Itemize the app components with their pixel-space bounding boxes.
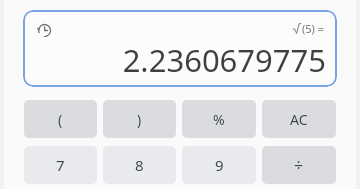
staticText: (5) =: [302, 21, 325, 36]
staticText: %: [213, 110, 225, 129]
staticText: 8: [135, 155, 144, 175]
staticText: 7: [56, 155, 65, 175]
staticText: 2.2360679775: [122, 39, 326, 81]
button[interactable]: History: [33, 19, 55, 41]
button[interactable]: %: [182, 100, 256, 138]
staticText: AC: [290, 110, 308, 129]
button[interactable]: (: [24, 100, 97, 138]
button[interactable]: ÷: [262, 146, 336, 184]
staticText: 9: [215, 155, 224, 175]
button[interactable]: 8: [103, 146, 176, 184]
button[interactable]: ): [103, 100, 176, 138]
button[interactable]: 7: [24, 146, 97, 184]
button[interactable]: AC: [262, 100, 336, 138]
button[interactable]: History: [23, 10, 337, 87]
staticText: (: [58, 110, 63, 129]
staticText: ): [137, 110, 142, 129]
staticText: ÷: [294, 154, 304, 176]
button[interactable]: 9: [182, 146, 256, 184]
